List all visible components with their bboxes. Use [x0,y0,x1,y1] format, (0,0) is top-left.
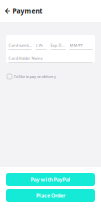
staticText: Pay with PayPal [30,176,70,183]
staticText: CVS [35,42,42,48]
button[interactable]: Place Order [6,189,95,202]
staticText: Card Holder Name [8,55,42,61]
button[interactable]: I'd like to pay on delivery [0,74,101,79]
staticText: Card number [8,42,31,48]
staticText: Exp. Date [50,42,65,48]
button[interactable]: Pay with PayPal [6,173,95,186]
staticText: Place Order [36,192,65,199]
staticText: MM/YY [69,42,82,48]
button[interactable]: Back [0,0,47,22]
staticText: I'd like to pay on delivery [14,74,56,79]
staticText: Payment [13,7,43,15]
